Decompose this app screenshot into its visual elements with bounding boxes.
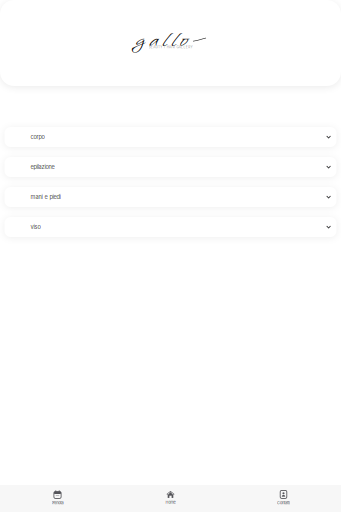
button[interactable]: Contatti (227, 485, 340, 512)
staticText: Home (165, 500, 175, 505)
button[interactable]: Prenota (1, 485, 114, 512)
staticText: viso (30, 224, 40, 230)
button[interactable]: mani e piedi (4, 187, 336, 207)
button[interactable]: viso (4, 217, 336, 237)
staticText: epilazione (30, 164, 54, 170)
button[interactable]: Home (114, 485, 227, 512)
button[interactable]: epilazione (4, 157, 336, 177)
staticText: gallo (135, 25, 188, 55)
staticText: mani e piedi (30, 194, 60, 200)
staticText: corpo (30, 134, 44, 140)
staticText: BEAUTY / HAIR GALLERY (148, 45, 192, 49)
staticText: Contatti (277, 500, 290, 505)
button[interactable]: corpo (4, 127, 336, 147)
staticText: Prenota (51, 500, 63, 505)
